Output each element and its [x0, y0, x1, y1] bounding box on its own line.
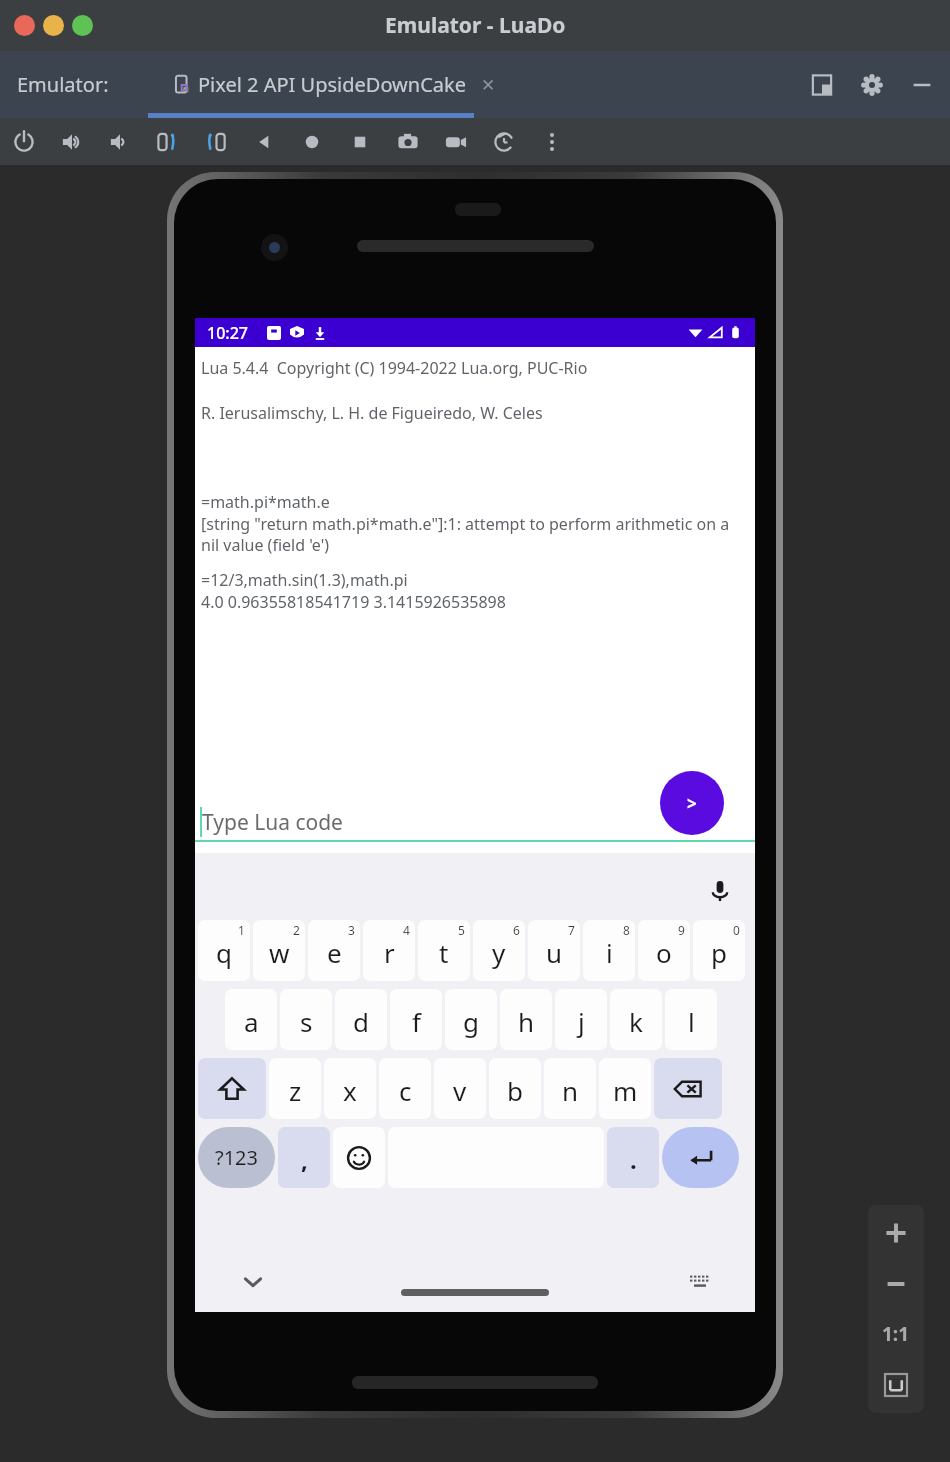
button[interactable]: Zoom in [874, 1211, 918, 1255]
staticText: 8 [623, 922, 630, 938]
button[interactable]: o [638, 920, 690, 981]
button[interactable]: n [544, 1058, 596, 1119]
button[interactable]: Split window [808, 71, 836, 99]
button[interactable]: b [489, 1058, 541, 1119]
button[interactable]: x [324, 1058, 376, 1119]
staticText: ?123 [215, 1144, 258, 1171]
button[interactable]: Fit to window [874, 1363, 918, 1407]
button[interactable]: Backspace [654, 1058, 722, 1119]
button[interactable]: u [528, 920, 580, 981]
staticText: a [244, 1004, 259, 1039]
button[interactable]: j [555, 989, 607, 1050]
button[interactable]: . [607, 1127, 659, 1188]
staticText: 4 [403, 922, 410, 938]
button[interactable]: g [445, 989, 497, 1050]
staticText: j [578, 1004, 585, 1039]
button[interactable]: Zoom [72, 15, 93, 36]
button[interactable]: l [665, 989, 717, 1050]
button[interactable]: Record screen [442, 128, 470, 156]
button[interactable]: Enter [662, 1127, 739, 1188]
button[interactable]: , [278, 1127, 330, 1188]
button[interactable]: t [418, 920, 470, 981]
button[interactable]: m [599, 1058, 651, 1119]
staticText: g [463, 1004, 479, 1039]
button[interactable]: i [583, 920, 635, 981]
staticText: 7 [568, 922, 575, 938]
button[interactable]: History [490, 128, 518, 156]
staticText: t [439, 935, 449, 970]
button[interactable]: Switch input method [682, 1264, 718, 1300]
button[interactable]: Run Lua code [660, 771, 724, 835]
staticText: l [688, 1004, 695, 1039]
button[interactable]: e [308, 920, 360, 981]
staticText: . [630, 1143, 637, 1176]
staticText: , [301, 1143, 308, 1176]
button[interactable]: q [198, 920, 250, 981]
button[interactable]: Home [298, 128, 326, 156]
button[interactable]: r [363, 920, 415, 981]
button[interactable]: a [225, 989, 277, 1050]
button[interactable]: Rotate left [154, 128, 182, 156]
button[interactable]: Minimize window [908, 71, 936, 99]
staticText: y [492, 935, 506, 970]
button[interactable]: Rotate right [202, 128, 230, 156]
button[interactable]: Volume up [58, 128, 86, 156]
button[interactable]: Close [14, 15, 35, 36]
staticText: Pixel 2 API UpsideDownCake [198, 71, 467, 98]
staticText: q [216, 935, 232, 970]
button[interactable]: Shift [198, 1058, 266, 1119]
button[interactable]: Hide keyboard [235, 1264, 271, 1300]
staticText: x [343, 1073, 357, 1108]
button[interactable]: Close tab [477, 74, 499, 96]
staticText: 5 [458, 922, 465, 938]
button[interactable]: Actual size [874, 1312, 918, 1356]
button[interactable]: More [538, 128, 566, 156]
button[interactable]: Zoom out [874, 1262, 918, 1306]
button[interactable]: c [379, 1058, 431, 1119]
staticText: Emulator - LuaDo [385, 11, 566, 40]
staticText: 1 [238, 922, 245, 938]
staticText: 4.0 0.96355818541719 3.1415926535898 [201, 591, 506, 613]
button[interactable]: Emoji [333, 1127, 385, 1188]
button[interactable]: Volume down [106, 128, 134, 156]
staticText: c [399, 1073, 412, 1108]
staticText: =12/3,math.sin(1.3),math.pi [201, 569, 408, 591]
staticText: p [711, 935, 727, 970]
button[interactable]: ?123 [198, 1127, 275, 1188]
staticText: 10:27 [207, 322, 248, 344]
staticText: =math.pi*math.e [201, 491, 330, 513]
button[interactable]: w [253, 920, 305, 981]
staticText: r [384, 935, 395, 970]
staticText: 9 [678, 922, 685, 938]
staticText: k [629, 1004, 643, 1039]
button[interactable]: Overview [346, 128, 374, 156]
button[interactable]: d [335, 989, 387, 1050]
staticText: e [327, 935, 342, 970]
staticText: > [687, 792, 697, 815]
button[interactable]: k [610, 989, 662, 1050]
button[interactable]: Settings [858, 71, 886, 99]
button[interactable]: Power [10, 128, 38, 156]
button[interactable]: z [269, 1058, 321, 1119]
button[interactable]: f [390, 989, 442, 1050]
staticText: 0 [733, 922, 740, 938]
button[interactable]: v [434, 1058, 486, 1119]
button[interactable]: h [500, 989, 552, 1050]
button[interactable]: p [693, 920, 745, 981]
button[interactable]: s [280, 989, 332, 1050]
staticText: w [269, 935, 290, 970]
button[interactable]: Voice input [700, 871, 740, 911]
staticText: ✕ [481, 75, 496, 95]
button[interactable]: Screenshot [394, 128, 422, 156]
staticText: [string "return math.pi*math.e"]:1: atte… [201, 513, 747, 556]
button[interactable]: Minimize [43, 15, 64, 36]
button[interactable]: y [473, 920, 525, 981]
staticText: 3 [348, 922, 355, 938]
staticText: s [300, 1004, 313, 1039]
staticText: d [353, 1004, 369, 1039]
staticText: z [289, 1073, 302, 1108]
staticText: 1:1 [882, 1321, 910, 1347]
staticText: 2 [293, 922, 300, 938]
button[interactable]: Back [250, 128, 278, 156]
